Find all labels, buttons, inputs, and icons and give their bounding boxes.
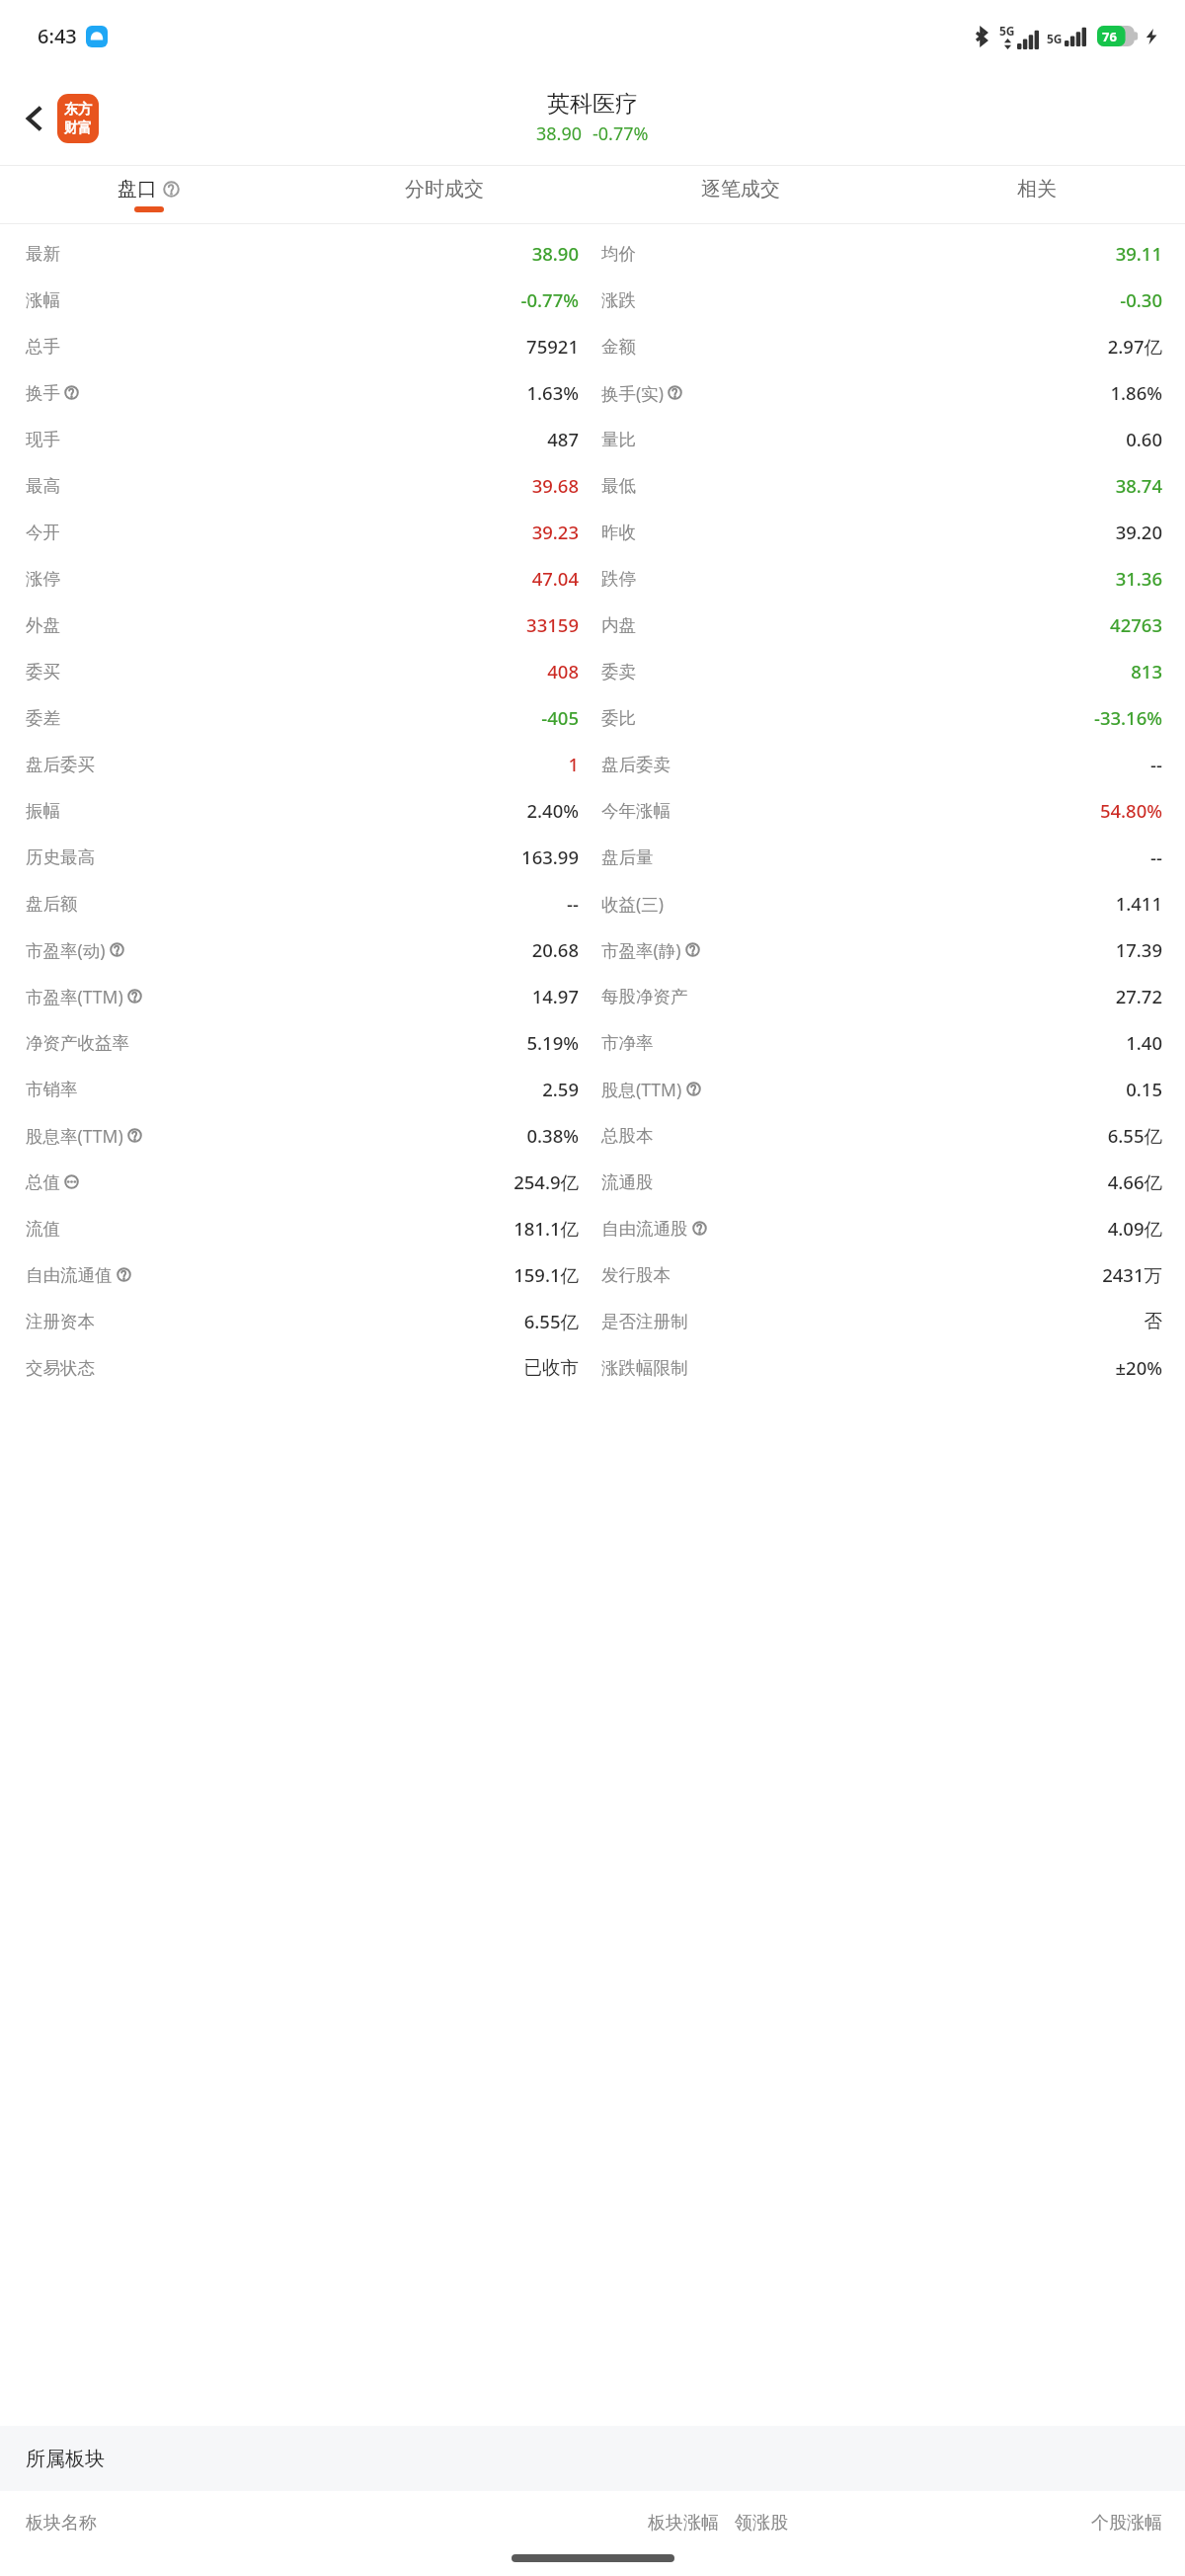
button[interactable]: 历史最高 bbox=[26, 834, 593, 880]
button[interactable]: 市盈率(静) bbox=[593, 926, 1162, 973]
button[interactable]: 盘后委卖 bbox=[593, 741, 1162, 787]
staticText: 委差 bbox=[26, 707, 60, 729]
staticText: 4.66亿 bbox=[654, 1169, 1162, 1194]
button[interactable]: 自由流通股 bbox=[593, 1205, 1162, 1251]
staticText: 47.04 bbox=[60, 566, 579, 591]
staticText: 2.40% bbox=[60, 798, 579, 823]
staticText: 分时成交 bbox=[405, 177, 484, 201]
button[interactable]: 最新 bbox=[26, 230, 593, 277]
staticText: -33.16% bbox=[636, 705, 1162, 730]
staticText: -0.77% bbox=[592, 121, 649, 146]
button[interactable]: 总手 bbox=[26, 323, 593, 369]
staticText: 39.11 bbox=[636, 241, 1162, 266]
staticText: 76 bbox=[1102, 28, 1117, 45]
button[interactable]: 委卖 bbox=[593, 648, 1162, 694]
button[interactable]: 股息(TTM) bbox=[593, 1066, 1162, 1112]
button[interactable]: 量比 bbox=[593, 416, 1162, 462]
button[interactable]: 内盘 bbox=[593, 602, 1162, 648]
button[interactable]: Back bbox=[12, 98, 57, 139]
staticText: 总手 bbox=[26, 336, 60, 358]
button[interactable]: 交易状态 bbox=[26, 1344, 593, 1391]
button[interactable]: 最高 bbox=[26, 462, 593, 509]
staticText: 181.1亿 bbox=[60, 1216, 579, 1241]
staticText: 现手 bbox=[26, 429, 60, 450]
button[interactable]: 自由流通值 bbox=[26, 1251, 593, 1298]
button[interactable]: 现手 bbox=[26, 416, 593, 462]
button[interactable]: 盘后量 bbox=[593, 834, 1162, 880]
staticText: 487 bbox=[60, 427, 579, 451]
staticText: 盘后额 bbox=[26, 893, 78, 915]
staticText: 涨幅 bbox=[26, 289, 60, 311]
staticText: 英科医疗 bbox=[547, 90, 638, 119]
button[interactable]: 委比 bbox=[593, 694, 1162, 741]
button[interactable]: 今年涨幅 bbox=[593, 787, 1162, 834]
button[interactable]: 涨停 bbox=[26, 555, 593, 602]
button[interactable]: 涨跌幅限制 bbox=[593, 1344, 1162, 1391]
staticText: 39.20 bbox=[636, 520, 1162, 544]
button[interactable]: 跌停 bbox=[593, 555, 1162, 602]
staticText: -405 bbox=[60, 705, 579, 730]
button[interactable]: 流值 bbox=[26, 1205, 593, 1251]
button[interactable]: 市销率 bbox=[26, 1066, 593, 1112]
button[interactable]: 最低 bbox=[593, 462, 1162, 509]
button[interactable]: 昨收 bbox=[593, 509, 1162, 555]
button[interactable]: 分时成交 bbox=[296, 166, 592, 223]
staticText: 最低 bbox=[601, 475, 636, 497]
staticText: 408 bbox=[60, 659, 579, 684]
staticText: 盘后委卖 bbox=[601, 754, 671, 775]
staticText: 159.1亿 bbox=[131, 1262, 579, 1287]
button[interactable]: 盘后额 bbox=[26, 880, 593, 926]
button[interactable]: 今开 bbox=[26, 509, 593, 555]
button[interactable]: 涨幅 bbox=[26, 277, 593, 323]
button[interactable]: 振幅 bbox=[26, 787, 593, 834]
button[interactable]: 总值 bbox=[26, 1159, 593, 1205]
button[interactable]: East Money bbox=[57, 94, 99, 143]
staticText: 财富 bbox=[64, 120, 92, 137]
staticText: 总股本 bbox=[601, 1125, 654, 1147]
button[interactable]: 市净率 bbox=[593, 1019, 1162, 1066]
staticText: 相关 bbox=[1017, 177, 1057, 201]
button[interactable]: 逐笔成交 bbox=[592, 166, 889, 223]
staticText: 发行股本 bbox=[601, 1264, 671, 1286]
staticText: -- bbox=[671, 752, 1162, 776]
button[interactable]: 总股本 bbox=[593, 1112, 1162, 1159]
staticText: 逐笔成交 bbox=[701, 177, 780, 201]
button[interactable]: 股息率(TTM) bbox=[26, 1112, 593, 1159]
staticText: 0.60 bbox=[636, 427, 1162, 451]
button[interactable]: 市盈率(TTM) bbox=[26, 973, 593, 1019]
button[interactable]: 是否注册制 bbox=[593, 1298, 1162, 1344]
staticText: -0.30 bbox=[636, 287, 1162, 312]
button[interactable]: 盘口 bbox=[0, 166, 296, 223]
button[interactable]: 均价 bbox=[593, 230, 1162, 277]
staticText: 75921 bbox=[60, 334, 579, 359]
button[interactable]: 每股净资产 bbox=[593, 973, 1162, 1019]
button[interactable]: 净资产收益率 bbox=[26, 1019, 593, 1066]
button[interactable]: 涨跌 bbox=[593, 277, 1162, 323]
staticText: 20.68 bbox=[124, 937, 579, 962]
staticText: 换手(实) bbox=[601, 381, 664, 405]
staticText: 163.99 bbox=[95, 845, 579, 869]
staticText: 所属板块 bbox=[26, 2447, 105, 2471]
staticText: 5.19% bbox=[129, 1030, 579, 1055]
button[interactable]: 委买 bbox=[26, 648, 593, 694]
button[interactable]: 相关 bbox=[889, 166, 1185, 223]
button[interactable]: 流通股 bbox=[593, 1159, 1162, 1205]
staticText: -0.77% bbox=[60, 287, 579, 312]
button[interactable]: 外盘 bbox=[26, 602, 593, 648]
button[interactable]: 金额 bbox=[593, 323, 1162, 369]
staticText: 254.9亿 bbox=[79, 1169, 579, 1194]
staticText: 813 bbox=[636, 659, 1162, 684]
staticText: 31.36 bbox=[636, 566, 1162, 591]
button[interactable]: 市盈率(动) bbox=[26, 926, 593, 973]
button[interactable]: 发行股本 bbox=[593, 1251, 1162, 1298]
button[interactable]: 收益(三) bbox=[593, 880, 1162, 926]
staticText: 委比 bbox=[601, 707, 636, 729]
button[interactable]: 换手(实) bbox=[593, 369, 1162, 416]
button[interactable]: 盘后委买 bbox=[26, 741, 593, 787]
staticText: 自由流通值 bbox=[26, 1264, 113, 1286]
button[interactable]: 注册资本 bbox=[26, 1298, 593, 1344]
staticText: 市盈率(TTM) bbox=[26, 985, 123, 1008]
staticText: 0.15 bbox=[701, 1077, 1162, 1101]
button[interactable]: 换手 bbox=[26, 369, 593, 416]
button[interactable]: 委差 bbox=[26, 694, 593, 741]
